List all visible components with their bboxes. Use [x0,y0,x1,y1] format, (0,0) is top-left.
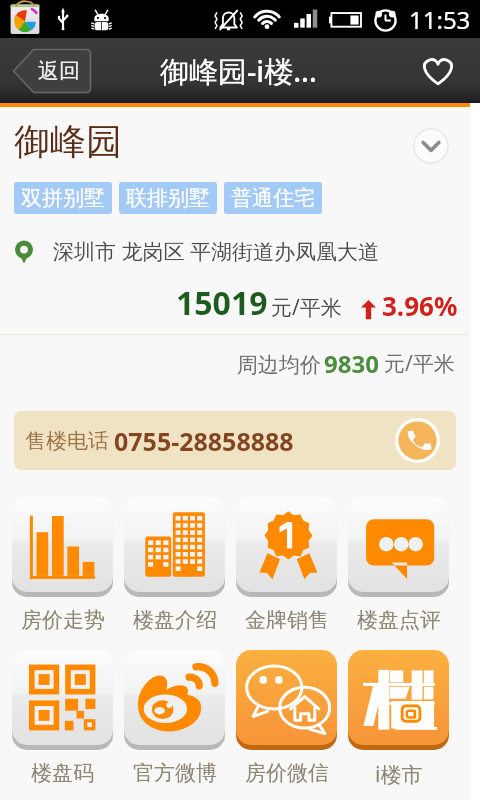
button[interactable]: 房价微信 [236,650,337,786]
staticText: 15019 [176,281,268,325]
staticText: 楼盘点评 [357,607,441,633]
staticText: 周边均价 [237,352,321,378]
staticText: 楼盘码 [31,760,94,786]
staticText: 普通住宅 [231,185,315,211]
staticText: 元/平米 [271,293,342,322]
button[interactable]: 双拼别墅 [14,182,112,214]
button[interactable]: 返回 [12,48,92,94]
staticText: 房价走势 [21,607,105,633]
staticText: 楼盘介绍 [133,607,217,633]
staticText: 双拼别墅 [21,185,105,211]
staticText: 金牌销售 [245,607,329,633]
button[interactable]: 售楼电话 [14,411,456,470]
button[interactable]: 官方微博 [124,650,225,786]
staticText: i楼市 [375,760,423,789]
staticText: 0755-28858888 [114,424,294,458]
button[interactable]: 普通住宅 [224,182,322,214]
staticText: 御峰园 [14,119,122,164]
button[interactable]: 楼盘介绍 [124,497,225,633]
staticText: 御峰园-i楼... [160,51,317,91]
staticText: 11:53 [409,3,471,36]
staticText: 返回 [38,58,80,84]
staticText: 3.96% [382,288,458,323]
button[interactable]: 楼盘码 [12,650,113,786]
staticText: 售楼电话 [25,428,109,454]
staticText: 联排别墅 [126,185,210,211]
staticText: 房价微信 [245,760,329,786]
button[interactable]: Favorite [414,47,462,95]
staticText: 深圳市 龙岗区 平湖街道办凤凰大道 [53,237,379,266]
button[interactable]: 楼盘点评 [348,497,449,633]
staticText: 官方微博 [133,760,217,786]
button[interactable]: Call [395,418,440,463]
button[interactable]: 联排别墅 [119,182,217,214]
staticText: 元/平米 [384,349,455,378]
staticText: 9830 [324,347,379,380]
button[interactable]: 房价走势 [12,497,113,633]
button[interactable]: 金牌销售 [236,497,337,633]
button[interactable]: i楼市 [348,650,449,789]
button[interactable]: Expand [413,128,449,164]
